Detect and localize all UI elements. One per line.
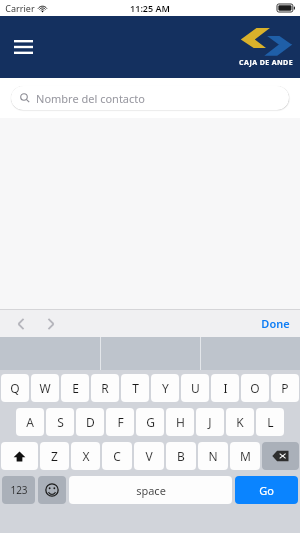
button[interactable]: S (46, 408, 74, 436)
staticText: N (208, 448, 218, 464)
button[interactable]: Emoji (38, 476, 66, 504)
staticText: J (208, 414, 212, 430)
staticText: S (57, 414, 64, 430)
staticText: Go (259, 483, 274, 498)
staticText: 123 (10, 483, 28, 497)
button[interactable]: Q (1, 374, 29, 402)
staticText: K (236, 414, 244, 430)
button[interactable]: U (181, 374, 209, 402)
staticText: Nombre del contacto (36, 91, 145, 106)
staticText: 11:25 AM (130, 2, 170, 14)
button[interactable]: Menu (8, 32, 38, 62)
button[interactable]: P (271, 374, 299, 402)
button[interactable]: Backspace (262, 442, 299, 470)
staticText: I (223, 380, 228, 396)
button[interactable]: N (198, 442, 228, 470)
staticText: U (191, 380, 200, 396)
button[interactable]: Y (151, 374, 179, 402)
button[interactable]: H (166, 408, 194, 436)
staticText: P (281, 380, 289, 396)
staticText: Z (51, 448, 58, 464)
button[interactable]: 123 (2, 476, 35, 504)
button[interactable]: Next field (40, 313, 62, 335)
button[interactable]: O (241, 374, 269, 402)
button[interactable]: space (69, 476, 232, 504)
button[interactable]: Z (40, 442, 69, 470)
staticText: W (39, 380, 51, 396)
staticText: H (176, 414, 185, 430)
button[interactable]: G (136, 408, 164, 436)
staticText: M (240, 448, 251, 464)
button[interactable]: C (102, 442, 132, 470)
staticText: E (72, 380, 79, 396)
button[interactable]: Done (257, 313, 294, 334)
button[interactable]: Shift (1, 442, 38, 470)
button[interactable]: V (134, 442, 164, 470)
button[interactable]: A (16, 408, 44, 436)
button[interactable]: L (256, 408, 284, 436)
button[interactable]: Go (235, 476, 298, 504)
staticText: X (82, 448, 90, 464)
staticText: V (145, 448, 153, 464)
button[interactable]: M (230, 442, 260, 470)
button[interactable]: Nombre del contacto (11, 86, 289, 110)
button[interactable]: D (76, 408, 104, 436)
button[interactable]: E (61, 374, 89, 402)
staticText: F (117, 414, 124, 430)
staticText: C (113, 448, 121, 464)
staticText: Y (162, 380, 169, 396)
staticText: B (177, 448, 185, 464)
staticText: L (267, 414, 274, 430)
staticText: Carrier (5, 2, 35, 14)
staticText: T (132, 380, 139, 396)
button[interactable]: B (166, 442, 196, 470)
button[interactable]: R (91, 374, 119, 402)
staticText: R (101, 380, 109, 396)
button[interactable]: CAJA DE ANDE (238, 27, 294, 68)
staticText: D (86, 414, 95, 430)
button[interactable]: I (211, 374, 239, 402)
button[interactable]: K (226, 408, 254, 436)
button[interactable]: Previous field (10, 313, 32, 335)
staticText: O (250, 380, 260, 396)
staticText: Done (261, 316, 290, 331)
staticText: A (26, 414, 34, 430)
button[interactable]: T (121, 374, 149, 402)
button[interactable]: W (31, 374, 59, 402)
staticText: CAJA DE ANDE (239, 58, 293, 68)
button[interactable]: J (196, 408, 224, 436)
button[interactable]: F (106, 408, 134, 436)
staticText: G (146, 414, 155, 430)
button[interactable]: X (71, 442, 100, 470)
staticText: Q (10, 380, 20, 396)
staticText: space (136, 483, 166, 498)
